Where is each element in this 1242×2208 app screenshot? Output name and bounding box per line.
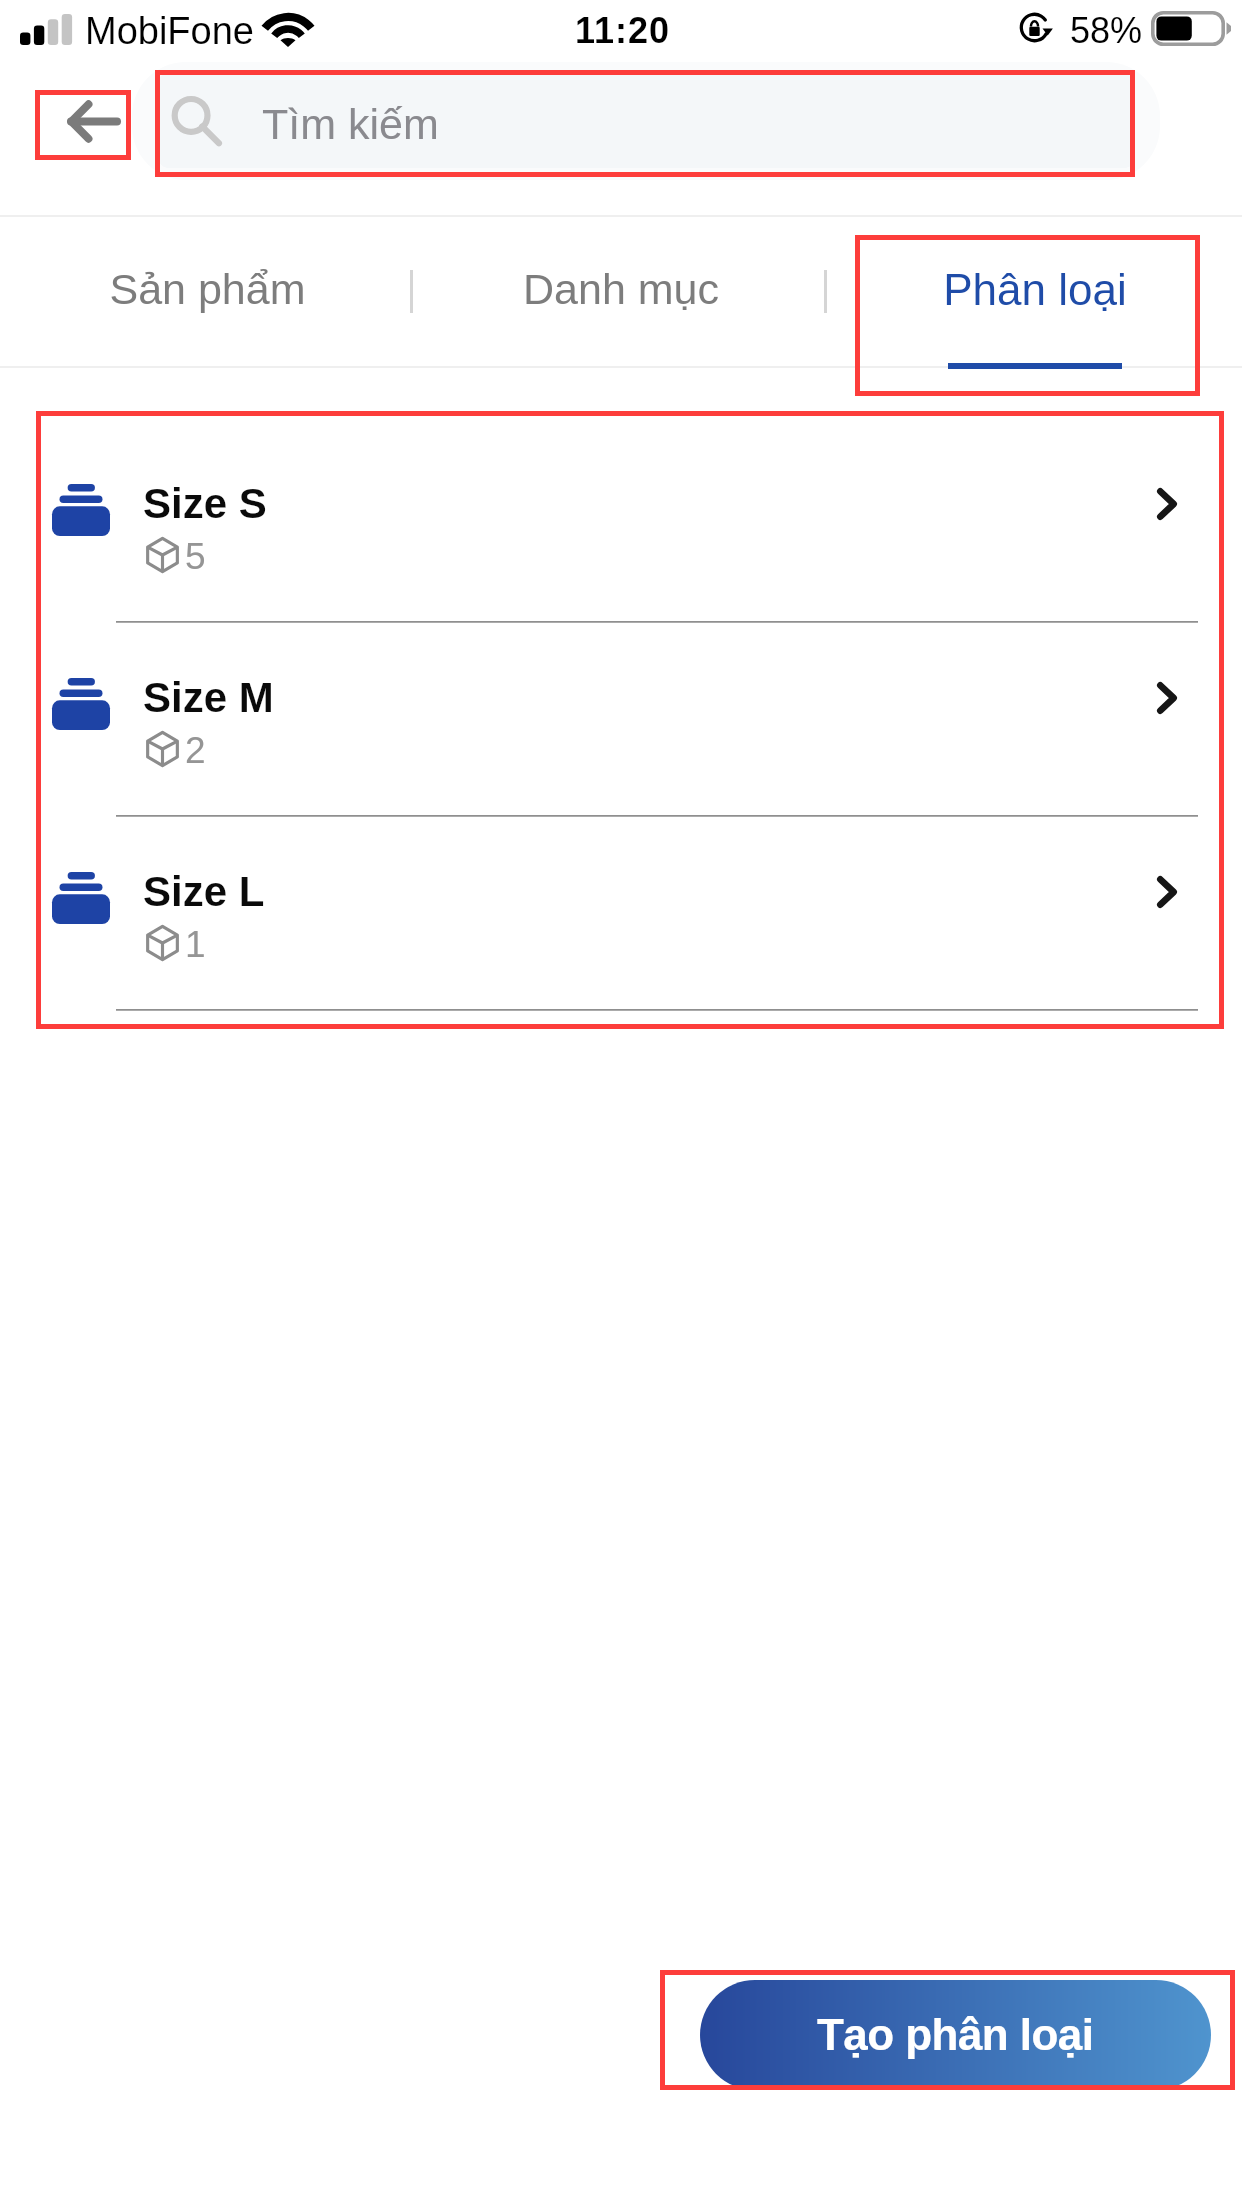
staticText: 1 [185,924,206,965]
staticText: 11:20 [575,10,671,50]
staticText: MobiFone [85,10,254,52]
staticText: Tạo phân loại [817,2010,1094,2059]
staticText: Phân loại [943,265,1127,314]
button[interactable]: Open Size S [1127,465,1207,545]
staticText: 2 [185,730,206,771]
button[interactable]: Size M [0,623,1242,817]
staticText: 5 [185,536,206,577]
button[interactable]: Size S [0,429,1242,623]
button[interactable]: Danh mục [414,217,828,367]
staticText: Danh mục [523,265,719,313]
button[interactable]: Open Size M [1127,659,1207,739]
button[interactable]: Tạo phân loại [700,1980,1211,2090]
button[interactable]: Size L [0,817,1242,1011]
staticText: Size L [143,868,265,915]
staticText: Size S [143,480,267,527]
staticText: 58% [1070,10,1143,50]
button[interactable]: Sản phẩm [0,217,414,367]
staticText: Sản phẩm [109,265,306,313]
button[interactable]: Phân loại [828,217,1242,367]
button[interactable]: Back [30,74,150,168]
staticText: Tìm kiếm [262,100,439,148]
staticText: Size M [143,674,274,721]
button[interactable]: Open Size L [1127,853,1207,933]
button[interactable]: Tìm kiếm [158,73,1135,168]
